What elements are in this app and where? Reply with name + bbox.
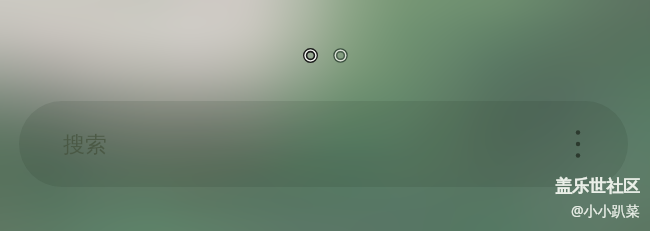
button[interactable]: 搜索 [19, 101, 628, 187]
staticText: 搜索 [63, 131, 107, 159]
button[interactable]: More options [562, 128, 594, 160]
button[interactable]: Page 1 [302, 47, 319, 64]
staticText: 盖乐世社区 [555, 176, 640, 197]
button[interactable]: Page 2 [332, 47, 349, 64]
staticText: @小小趴菜 [571, 201, 640, 220]
